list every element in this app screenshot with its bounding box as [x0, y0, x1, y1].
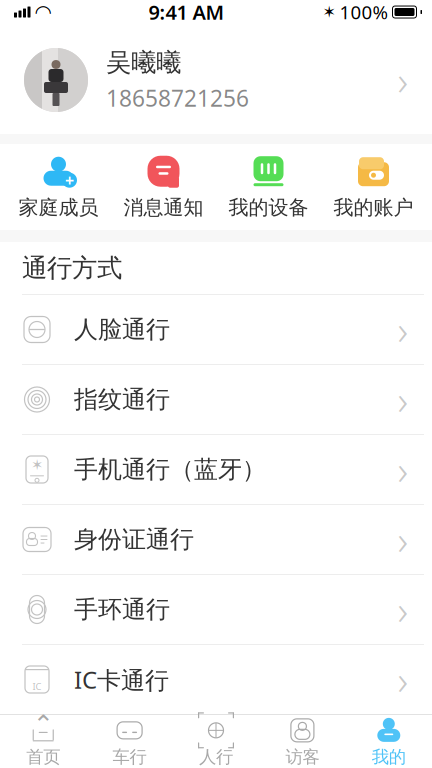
staticText: 9:41 AM: [148, 0, 224, 25]
staticText: 100%: [339, 0, 388, 24]
staticText: +: [65, 170, 74, 191]
staticText: 车行: [113, 746, 147, 768]
staticText: 家庭成员: [18, 195, 98, 220]
button[interactable]: 我的: [346, 715, 432, 768]
staticText: ◠: [35, 1, 50, 23]
button[interactable]: 手环通行: [0, 575, 432, 644]
button[interactable]: 人脸通行: [0, 295, 432, 364]
staticText: 首页: [26, 746, 60, 768]
button[interactable]: 车行: [86, 715, 173, 768]
staticText: IC卡通行: [74, 663, 169, 695]
button[interactable]: ✶: [0, 435, 432, 504]
staticText: 访客: [285, 746, 319, 768]
staticText: ›: [397, 53, 408, 106]
staticText: ›: [397, 583, 408, 636]
button[interactable]: 我的设备: [216, 142, 321, 232]
staticText: 18658721256: [106, 83, 249, 113]
staticText: ›: [397, 443, 408, 496]
button[interactable]: 吴曦曦: [0, 26, 432, 134]
staticText: 手机通行（蓝牙）: [74, 455, 266, 484]
staticText: 消息通知: [123, 195, 203, 220]
staticText: ✶: [322, 3, 335, 21]
staticText: ›: [397, 373, 408, 426]
staticText: 身份证通行: [74, 525, 194, 554]
button[interactable]: 消息通知: [111, 142, 216, 232]
staticText: 手环通行: [74, 595, 170, 624]
staticText: 人行: [199, 746, 233, 768]
staticText: IC: [32, 680, 41, 693]
staticText: 吴曦曦: [106, 47, 181, 78]
button[interactable]: 人行: [173, 715, 259, 768]
staticText: ›: [397, 303, 408, 356]
button[interactable]: 指纹通行: [0, 365, 432, 434]
staticText: 指纹通行: [74, 385, 170, 414]
staticText: 我的设备: [228, 195, 308, 220]
staticText: 我的账户: [333, 195, 413, 220]
staticText: ⌃: [33, 710, 54, 739]
staticText: ›: [397, 653, 408, 706]
button[interactable]: +: [6, 142, 111, 232]
button[interactable]: 访客: [259, 715, 346, 768]
staticText: ✶: [31, 457, 43, 473]
button[interactable]: ⌃: [0, 715, 86, 768]
staticText: ›: [397, 513, 408, 566]
staticText: 人脸通行: [74, 315, 170, 344]
staticText: 我的: [372, 746, 406, 768]
button[interactable]: IC: [0, 645, 432, 714]
staticText: 通行方式: [22, 252, 122, 283]
button[interactable]: 我的账户: [321, 142, 426, 232]
button[interactable]: 身份证通行: [0, 505, 432, 574]
